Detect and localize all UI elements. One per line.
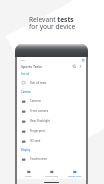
button[interactable]: Touchscreen: [17, 154, 86, 164]
staticText: Camera: [21, 90, 31, 94]
staticText: Touchscreen: [30, 157, 48, 161]
staticText: Front camera: [30, 109, 49, 113]
staticText: Sports Tests: [21, 64, 42, 69]
staticText: Camera: [30, 99, 41, 103]
staticText: SD card: [30, 139, 41, 143]
button[interactable]: Run all tests: [17, 77, 86, 88]
staticText: Run all tests: [30, 81, 47, 85]
button[interactable]: Mobile Tests: [63, 166, 86, 179]
staticText: See all: [21, 72, 30, 76]
button[interactable]: SD card: [17, 136, 86, 146]
button[interactable]: Fingerprint: [17, 126, 86, 136]
staticText: Custom test: [45, 175, 58, 178]
staticText: Fingerprint: [30, 129, 46, 133]
button[interactable]: Custom test: [40, 166, 63, 179]
button[interactable]: Front camera: [17, 106, 86, 116]
button[interactable]: See all: [21, 71, 86, 77]
button[interactable]: Rear Flashlight: [17, 116, 86, 126]
staticText: Mobile Tests: [68, 175, 82, 178]
staticText: 4:25: [20, 58, 25, 61]
staticText: Rear Flashlight: [30, 119, 51, 123]
button[interactable]: Camera: [17, 96, 86, 106]
button[interactable]: Home: [17, 166, 40, 179]
button[interactable]: More options: [78, 64, 83, 69]
staticText: Relevant tests for your device: [29, 15, 76, 31]
button[interactable]: Search: [72, 64, 77, 69]
staticText: Home: [25, 175, 32, 178]
staticText: Display: [21, 148, 31, 152]
